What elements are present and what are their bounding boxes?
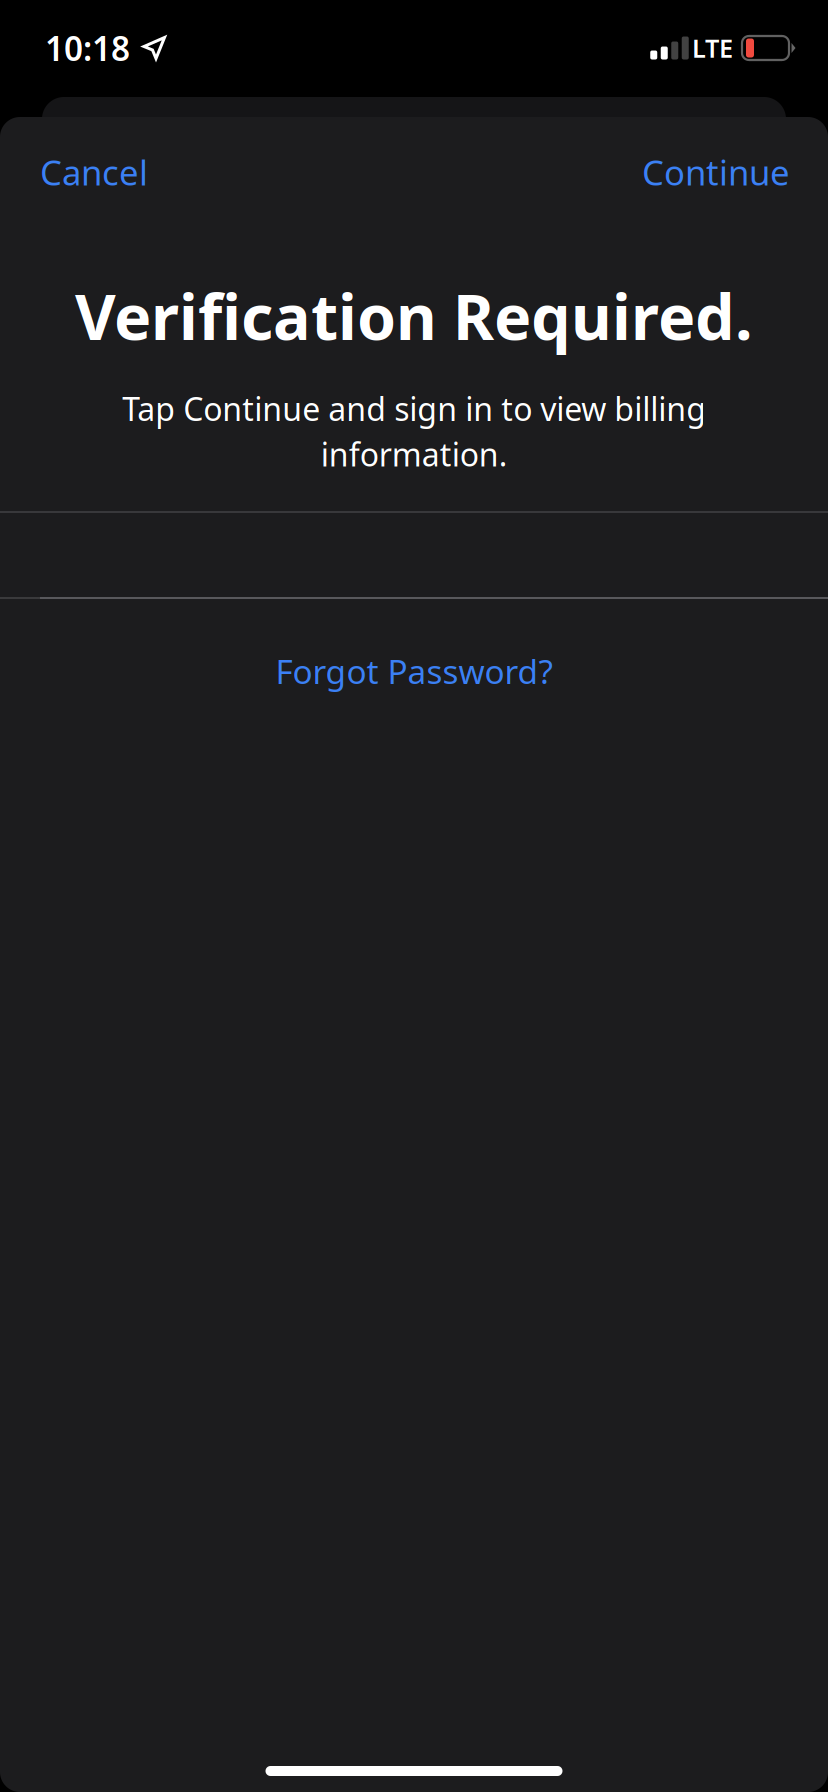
staticText: 10:18 xyxy=(45,26,130,70)
staticText: LTE xyxy=(692,31,733,65)
staticText: Cancel xyxy=(40,149,148,195)
staticText: Continue xyxy=(642,149,790,195)
staticText: Forgot Password? xyxy=(275,649,552,693)
button[interactable]: Cancel xyxy=(0,131,178,213)
button[interactable]: Continue xyxy=(612,131,828,213)
staticText: Verification Required. xyxy=(75,274,753,357)
button[interactable]: Forgot Password? xyxy=(0,627,828,715)
staticText: Tap Continue and sign in to view billing… xyxy=(122,387,706,475)
